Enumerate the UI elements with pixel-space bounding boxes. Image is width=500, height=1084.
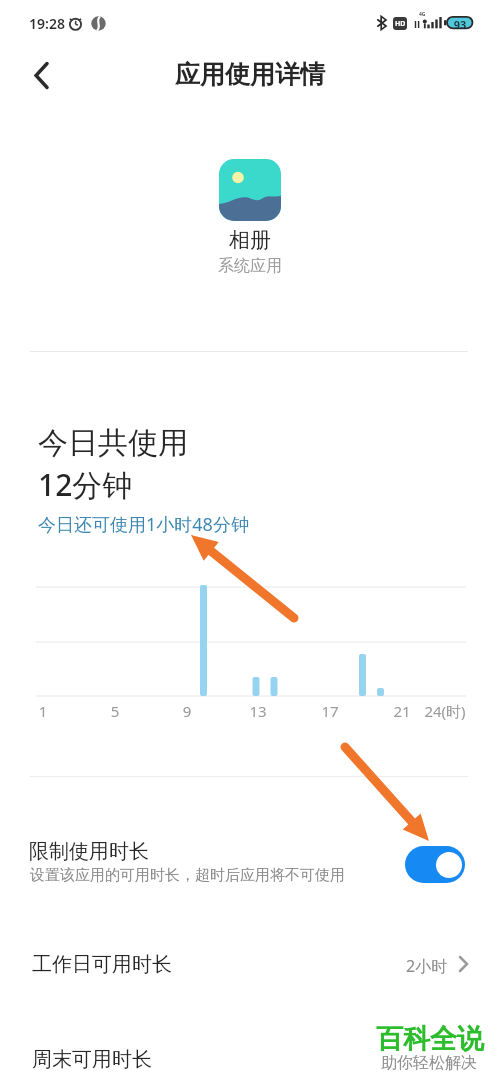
staticText: 12分钟 — [38, 464, 133, 505]
button[interactable] — [22, 55, 62, 95]
staticText: 2小时 — [406, 955, 448, 977]
staticText: 工作日可用时长 — [32, 952, 172, 977]
button[interactable] — [405, 846, 465, 883]
staticText: 5 — [105, 701, 125, 721]
staticText: 17 — [320, 701, 340, 721]
staticText: 设置该应用的可用时长，超时后应用将不可使用 — [30, 866, 345, 885]
staticText: HD — [395, 19, 406, 29]
staticText: 93 — [448, 17, 472, 32]
button[interactable]: 周末可用时长 — [0, 1032, 500, 1084]
staticText: 1 — [33, 701, 53, 721]
staticText: 助你轻松解决 — [381, 1053, 477, 1073]
button[interactable]: 工作日可用时长 — [0, 935, 500, 991]
staticText: 今日共使用 — [38, 424, 188, 462]
staticText: 21 — [392, 701, 412, 721]
staticText: 百科全说 — [376, 1022, 484, 1056]
staticText: 今日还可使用1小时48分钟 — [38, 512, 249, 537]
staticText: 相册 — [0, 227, 500, 253]
staticText: 周末可用时长 — [32, 1047, 152, 1072]
staticText: 13 — [248, 701, 268, 721]
staticText: 9 — [177, 701, 197, 721]
staticText: 限制使用时长 — [29, 839, 149, 864]
staticText: 应用使用详情 — [0, 59, 500, 90]
staticText: 系统应用 — [0, 256, 500, 276]
staticText: 19:28 — [29, 14, 65, 33]
button[interactable]: 限制使用时长 — [0, 820, 500, 912]
staticText: 4G — [419, 11, 426, 18]
staticText: 24(时) — [423, 701, 467, 721]
